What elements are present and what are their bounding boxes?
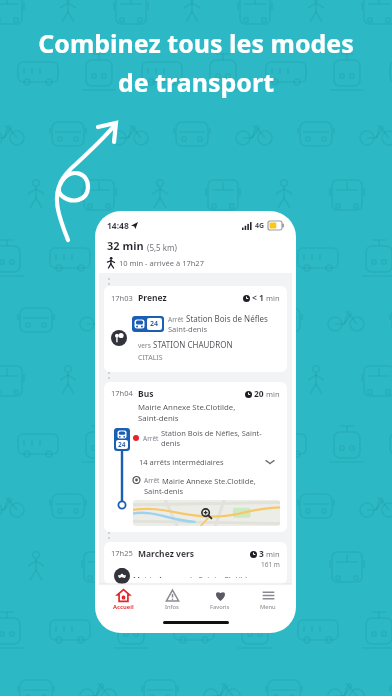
staticText: 24 bbox=[150, 319, 159, 329]
staticText: 10 min - arrivée à 17h27 bbox=[119, 258, 204, 268]
staticText: vers bbox=[138, 341, 153, 350]
staticText: 161 m bbox=[261, 560, 280, 569]
staticText: Menu bbox=[260, 603, 276, 611]
staticText: 17h25 bbox=[111, 548, 133, 558]
staticText: 17h03 bbox=[111, 293, 133, 303]
staticText: 4G bbox=[255, 221, 265, 231]
staticText: Accueil bbox=[113, 603, 134, 611]
staticText: 32 min bbox=[107, 238, 144, 253]
staticText: < 1 bbox=[252, 292, 264, 304]
staticText: min bbox=[266, 293, 280, 303]
staticText: 14 arrêts intermédiaires bbox=[139, 457, 224, 467]
staticText: 3 bbox=[259, 548, 264, 560]
staticText: STATION CHAUDRON bbox=[153, 339, 233, 350]
button[interactable]: 17h03 bbox=[104, 286, 287, 372]
button[interactable]: Infos bbox=[148, 585, 196, 615]
staticText: Station Bois de Néfles bbox=[186, 313, 268, 324]
staticText: Saint-denis bbox=[168, 324, 208, 334]
staticText: Combinez tous les modes bbox=[38, 26, 354, 60]
staticText: de transport bbox=[118, 65, 274, 99]
staticText: (5,5 km) bbox=[147, 242, 177, 253]
staticText: Infos bbox=[165, 603, 179, 611]
button[interactable]: 14 arrêts intermédiaires bbox=[133, 453, 280, 471]
staticText: Bus bbox=[138, 388, 154, 400]
staticText: Arrêt bbox=[144, 476, 162, 485]
staticText: Favoris bbox=[210, 603, 230, 611]
staticText: Saint-denis bbox=[144, 486, 184, 496]
button[interactable]: Carte de l'itinéraire bbox=[133, 500, 280, 526]
button[interactable]: 17h04 bbox=[104, 382, 287, 532]
staticText: 14:48 bbox=[107, 220, 129, 232]
button[interactable]: Menu bbox=[244, 585, 292, 615]
staticText: 20 bbox=[254, 388, 264, 400]
staticText: Mairie Annexe Ste.Clotilde, Saint-denis bbox=[138, 402, 245, 424]
staticText: Mairie Annexe Ste.Clotilde, bbox=[162, 476, 256, 486]
staticText: Marchez vers bbox=[138, 548, 195, 560]
staticText: 24 bbox=[118, 440, 126, 449]
staticText: CITALIS bbox=[138, 353, 163, 363]
staticText: Arrêt bbox=[143, 434, 161, 443]
button[interactable]: Accueil bbox=[99, 585, 148, 615]
staticText: Arrêt bbox=[168, 315, 186, 324]
staticText: 17h04 bbox=[111, 388, 133, 398]
staticText: min bbox=[266, 389, 280, 399]
staticText: Mairie Annexe de Sainte-Clotilde, bbox=[133, 574, 254, 578]
button[interactable]: Favoris bbox=[196, 585, 244, 615]
staticText: Prenez bbox=[138, 292, 167, 304]
staticText: Station Bois de Néfles, Saint-denis bbox=[161, 428, 280, 448]
button[interactable]: 17h25 bbox=[104, 542, 287, 584]
staticText: min bbox=[266, 549, 280, 559]
